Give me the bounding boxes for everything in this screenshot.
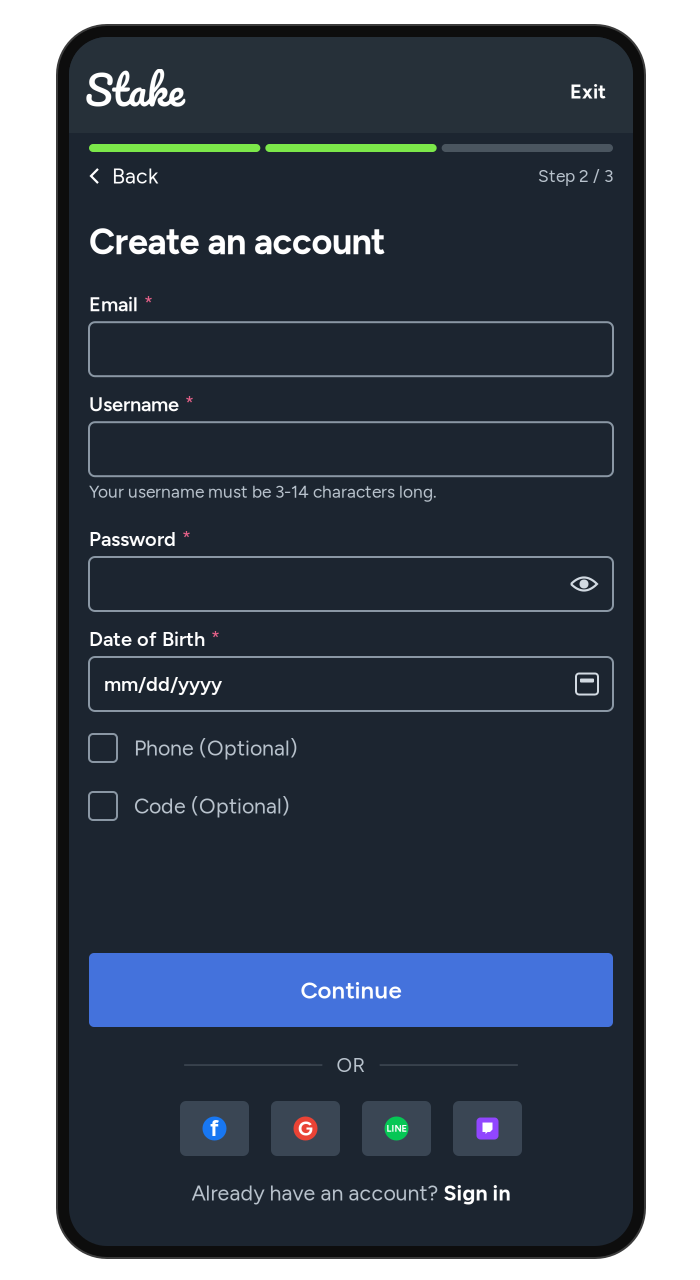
staticText: Username [89, 392, 179, 416]
button[interactable]: Phone (Optional) [89, 734, 613, 762]
button[interactable]: Exit [556, 58, 606, 111]
staticText: Create an account [89, 220, 385, 263]
staticText: Password [89, 527, 176, 551]
staticText: * [211, 627, 220, 649]
staticText: Step 2 / 3 [538, 166, 613, 186]
staticText: LINE [386, 1123, 406, 1134]
staticText: Continue [300, 976, 401, 1004]
staticText: Code (Optional) [134, 793, 290, 819]
staticText: Already have an account? [191, 1180, 443, 1206]
staticText: Date of Birth [89, 627, 205, 651]
staticText: Sign in [443, 1180, 510, 1206]
staticText: Phone (Optional) [134, 735, 298, 761]
staticText: Exit [570, 79, 606, 103]
staticText: Back [112, 163, 158, 189]
button[interactable]: Sign in with Facebook [180, 1101, 249, 1156]
staticText: Your username must be 3-14 characters lo… [89, 481, 437, 502]
staticText: Email [89, 292, 138, 316]
button[interactable]: Sign in with Google [271, 1101, 340, 1156]
button[interactable]: Sign in with Twitch [453, 1101, 522, 1156]
staticText: mm/dd/yyyy [104, 672, 222, 696]
staticText: OR [336, 1053, 365, 1077]
button[interactable]: Continue [89, 953, 613, 1027]
button[interactable]: Back [89, 165, 158, 187]
staticText: * [144, 292, 153, 315]
staticText: * [185, 392, 194, 415]
staticText: G [298, 1116, 313, 1140]
button[interactable]: Sign in with LINE [362, 1101, 431, 1156]
staticText: * [182, 527, 191, 549]
button[interactable]: Code (Optional) [89, 792, 613, 820]
staticText: f [210, 1114, 219, 1142]
button[interactable]: Sign in [443, 1180, 510, 1206]
staticText: Stake [85, 54, 184, 125]
